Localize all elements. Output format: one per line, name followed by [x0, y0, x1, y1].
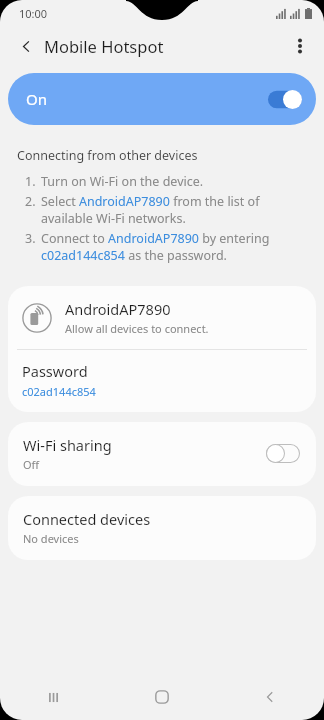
staticText: Password	[22, 361, 88, 381]
staticText: Connect to AndroidAP7890 by entering c02…	[41, 230, 307, 264]
staticText: 1.	[25, 173, 41, 190]
button[interactable]: Connected devices	[8, 496, 316, 560]
button[interactable]: On	[8, 73, 316, 125]
button[interactable]: Wi-Fi sharing	[8, 422, 316, 486]
staticText: Wi-Fi sharing	[23, 435, 112, 455]
staticText: No devices	[23, 531, 79, 546]
staticText: Select AndroidAP7890 from the list of av…	[41, 193, 307, 227]
button[interactable]: Password	[8, 350, 316, 412]
staticText: Connected devices	[23, 509, 151, 529]
staticText: c02ad144c854	[22, 384, 96, 399]
button[interactable]: Home	[108, 674, 216, 720]
button[interactable]: More options	[282, 28, 318, 64]
staticText: AndroidAP7890	[65, 299, 171, 319]
staticText: 2.	[25, 193, 41, 210]
staticText: On	[26, 89, 47, 109]
button[interactable]: Back	[8, 28, 44, 64]
button[interactable]: Back	[216, 674, 324, 720]
staticText: Connecting from other devices	[17, 147, 198, 164]
staticText: Allow all devices to connect.	[65, 321, 209, 336]
staticText: Off	[23, 457, 40, 472]
staticText: Turn on Wi-Fi on the device.	[41, 173, 204, 190]
staticText: 3.	[25, 230, 41, 247]
staticText: 10:00	[19, 6, 48, 21]
button[interactable]: Recents	[0, 674, 108, 720]
button[interactable]: AndroidAP7890	[8, 286, 316, 349]
staticText: Mobile Hotspot	[44, 35, 164, 57]
